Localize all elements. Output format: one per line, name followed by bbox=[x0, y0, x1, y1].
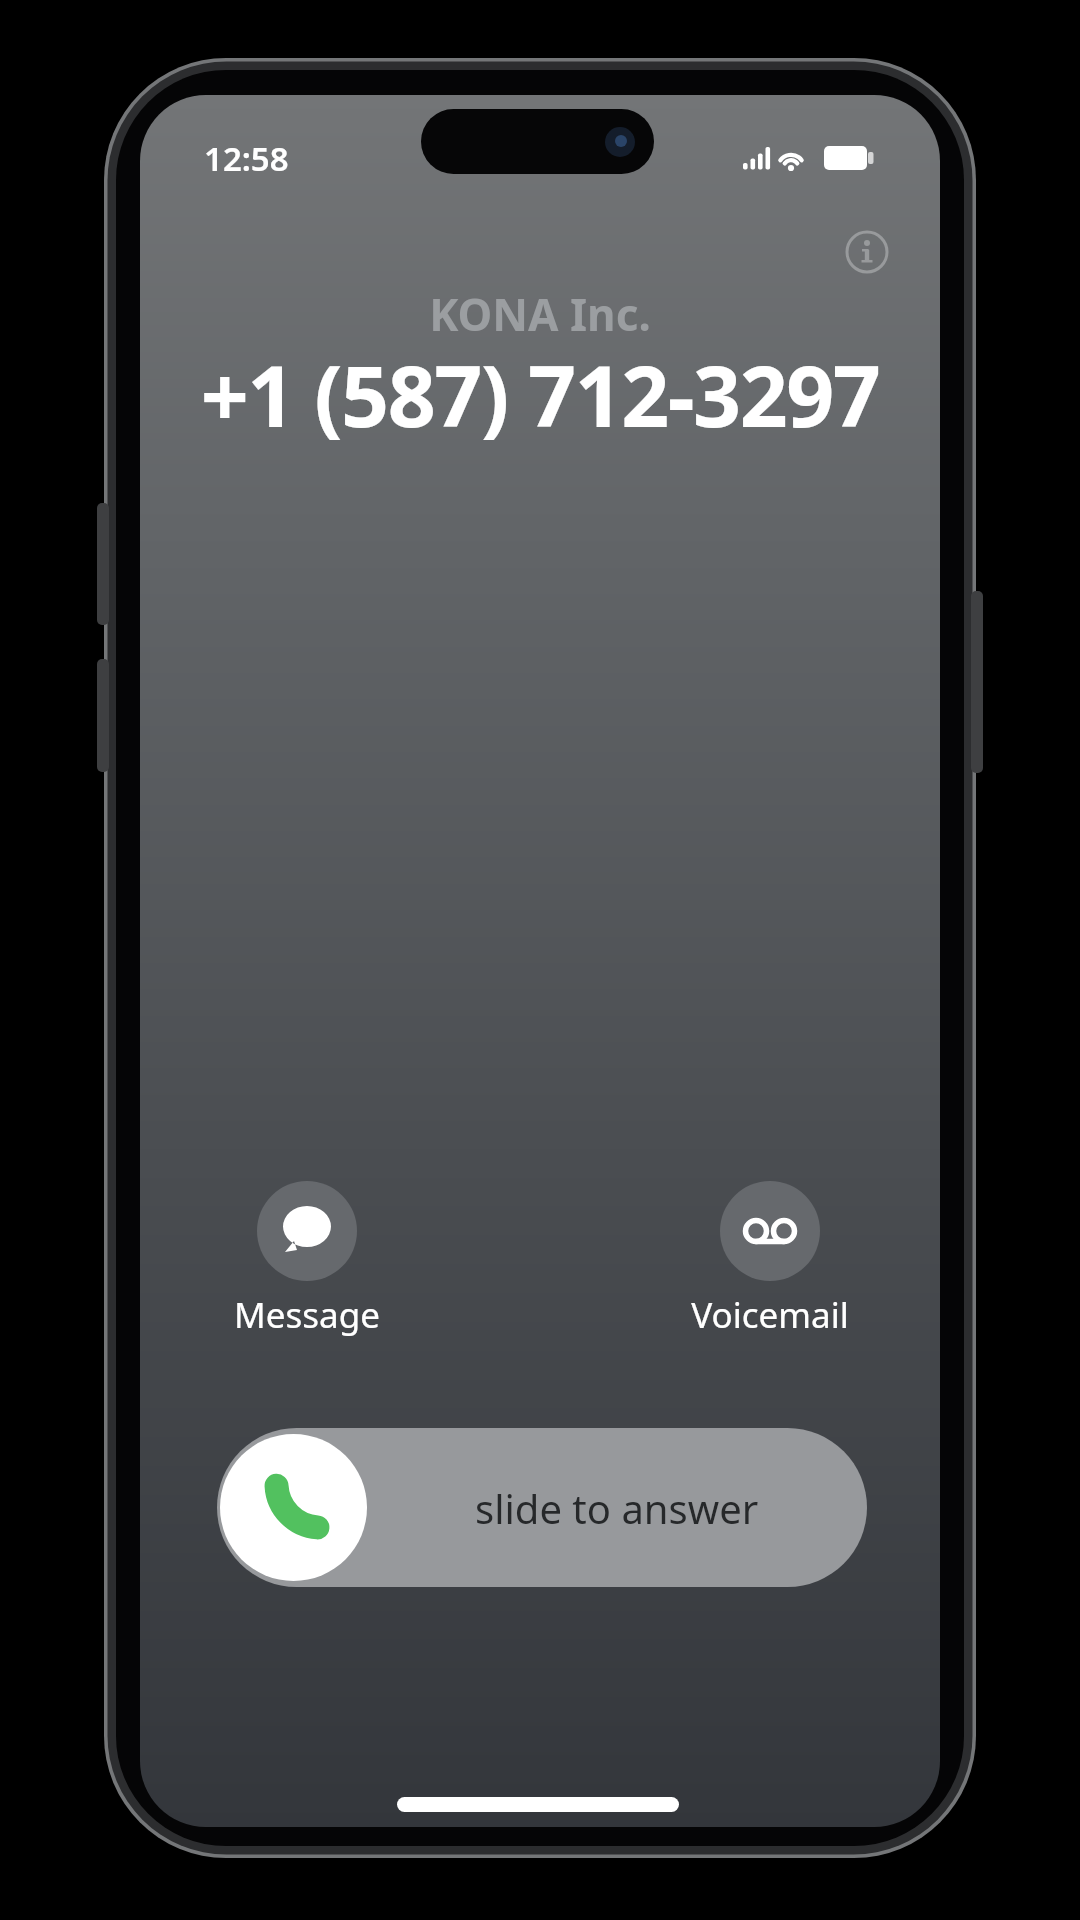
staticText: 12:58 bbox=[204, 136, 289, 181]
staticText: Message bbox=[187, 1291, 427, 1341]
staticText: slide to answer bbox=[475, 1481, 759, 1535]
staticText: +1 (587) 712-3297 bbox=[140, 337, 940, 451]
staticText: KONA Inc. bbox=[140, 284, 940, 344]
button[interactable]: slide to answer bbox=[217, 1428, 867, 1587]
button[interactable] bbox=[720, 1181, 820, 1281]
button[interactable] bbox=[835, 220, 899, 284]
staticText: Voicemail bbox=[650, 1291, 890, 1341]
button[interactable] bbox=[257, 1181, 357, 1281]
